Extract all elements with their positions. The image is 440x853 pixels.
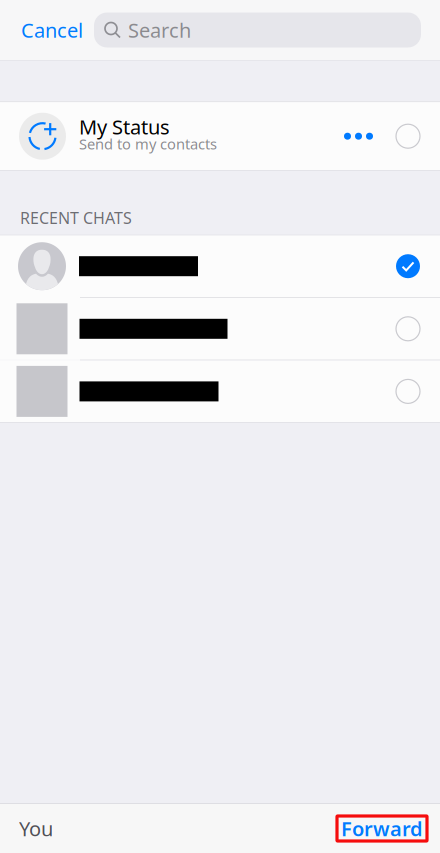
button[interactable]: Search: [94, 12, 421, 47]
button[interactable]: [0, 361, 440, 422]
button[interactable]: My Status: [0, 102, 440, 170]
staticText: You: [19, 815, 53, 842]
button[interactable]: More options: [338, 121, 379, 152]
button[interactable]: Forward: [337, 816, 427, 841]
staticText: RECENT CHATS: [20, 207, 132, 228]
button[interactable]: [0, 298, 440, 360]
staticText: My Status: [79, 113, 170, 140]
staticText: Send to my contacts: [79, 134, 217, 153]
button[interactable]: Cancel: [0, 17, 94, 43]
staticText: Search: [128, 17, 191, 43]
button[interactable]: [0, 235, 440, 297]
staticText: Forward: [341, 815, 423, 842]
staticText: Cancel: [21, 17, 83, 43]
